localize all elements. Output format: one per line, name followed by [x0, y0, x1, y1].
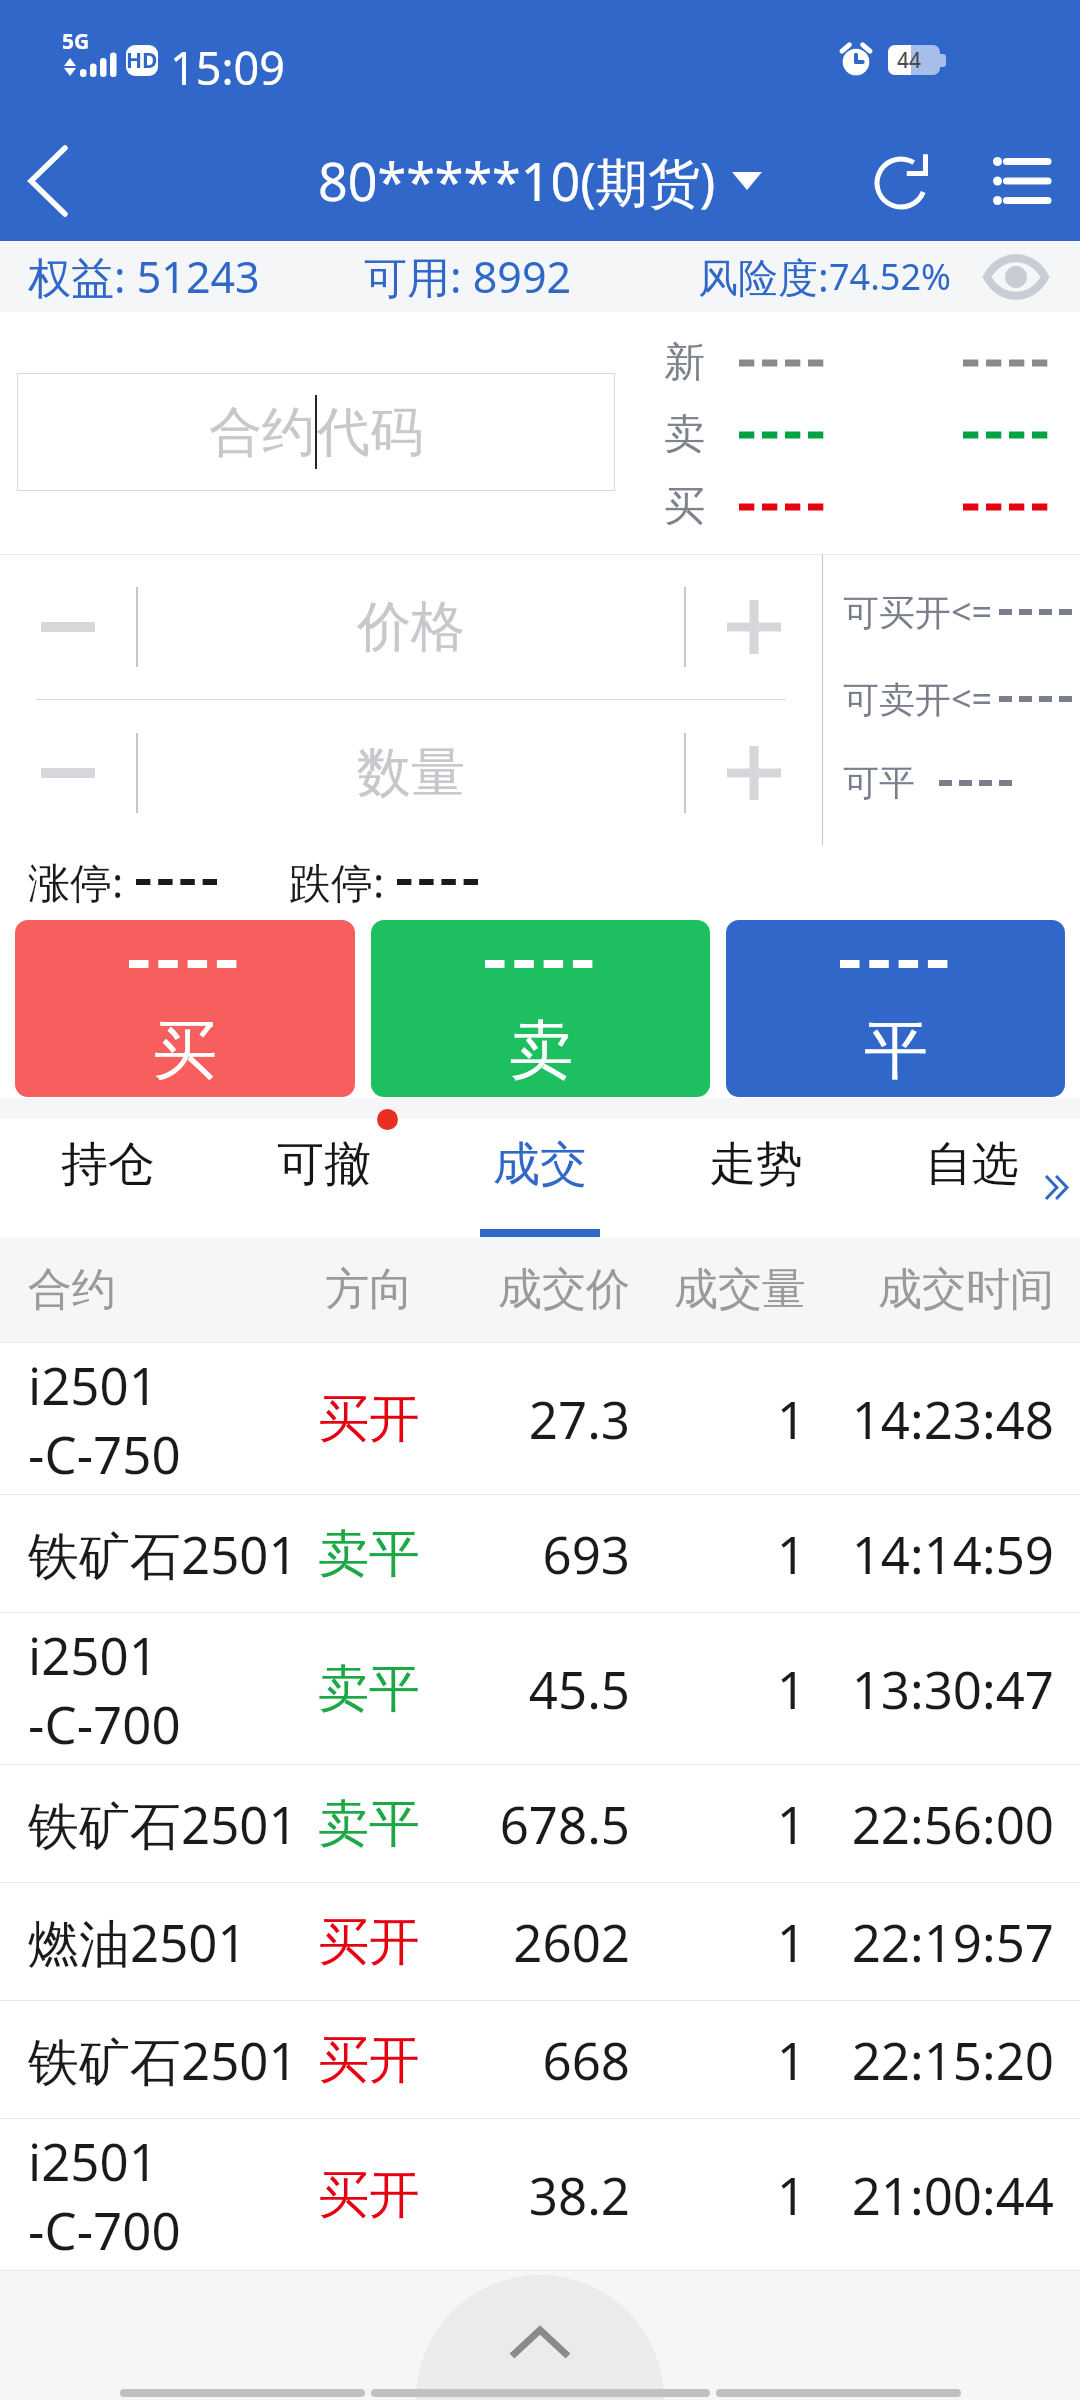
staticText: 铁矿石2501 [28, 2025, 298, 2095]
staticText: 成交量 [630, 1262, 806, 1317]
staticText: i2501 [28, 1620, 158, 1689]
button[interactable]: 合约 [17, 373, 615, 491]
button[interactable]: i2501 [0, 1613, 1080, 1765]
staticText: 14:14:59 [806, 1519, 1054, 1588]
staticText: 风险度: [698, 249, 829, 304]
staticText: 14:23:48 [806, 1384, 1054, 1453]
button[interactable]: Scroll to top [416, 2275, 664, 2400]
button[interactable]: Toggle balance visibility [976, 241, 1056, 312]
button[interactable]: Back [716, 2389, 961, 2397]
staticText: 买开 [308, 1910, 430, 1974]
button[interactable]: 铁矿石2501 [0, 2001, 1080, 2119]
staticText: 铁矿石2501 [28, 1519, 298, 1589]
button[interactable]: 燃油2501 [0, 1883, 1080, 2001]
staticText: 卖 [509, 1010, 573, 1091]
button[interactable]: 平 [726, 920, 1065, 1097]
staticText: 可平 [843, 760, 915, 805]
staticText: 成交 [493, 1135, 587, 1194]
staticText: 38.2 [430, 2160, 630, 2229]
staticText: 买 [664, 481, 705, 533]
staticText: 铁矿石2501 [28, 1789, 298, 1859]
staticText: 21:00:44 [806, 2160, 1054, 2229]
staticText: 13:30:47 [806, 1654, 1054, 1723]
staticText: 44 [897, 46, 922, 75]
staticText: 卖 [664, 409, 705, 461]
staticText: 22:56:00 [806, 1789, 1054, 1858]
button[interactable]: 自选 [864, 1119, 1080, 1237]
staticText: -C-700 [28, 2195, 181, 2264]
button[interactable]: 铁矿石2501 [0, 1765, 1080, 1883]
staticText: 668 [430, 2025, 630, 2094]
staticText: 693 [430, 1519, 630, 1588]
staticText: 成交时间 [806, 1262, 1054, 1317]
button[interactable]: i2501 [0, 1343, 1080, 1495]
staticText: 27.3 [430, 1384, 630, 1453]
button[interactable]: 走势 [648, 1119, 864, 1237]
staticText: -C-700 [28, 1689, 181, 1758]
staticText: 买 [153, 1010, 217, 1091]
button[interactable]: 铁矿石2501 [0, 1495, 1080, 1613]
staticText: 价格 [357, 593, 465, 661]
staticText: 5G [62, 27, 90, 56]
staticText: 80*****10(期货) [318, 145, 716, 216]
button[interactable]: Back [0, 120, 96, 241]
button[interactable]: 卖 [371, 920, 710, 1097]
button[interactable]: Decrease 数量 [0, 700, 136, 845]
staticText: 持仓 [61, 1135, 155, 1194]
button[interactable]: 可撤 [216, 1119, 432, 1237]
button[interactable]: Recents [120, 2389, 365, 2397]
staticText: 卖平 [308, 1792, 430, 1856]
staticText: 新 [664, 337, 705, 389]
button[interactable]: 买 [15, 920, 355, 1097]
staticText: 方向 [308, 1262, 430, 1317]
staticText: 2602 [430, 1907, 630, 1976]
staticText: 合约 [28, 1262, 308, 1317]
staticText: 买开 [308, 2028, 430, 2092]
staticText: 1 [630, 1654, 806, 1723]
staticText: 走势 [709, 1135, 803, 1194]
button[interactable]: Refresh [844, 120, 962, 241]
staticText: 权益: 51243 [28, 247, 260, 306]
staticText: 涨停: [28, 853, 124, 910]
staticText: 卖平 [308, 1522, 430, 1586]
button[interactable]: More tabs [1035, 1165, 1077, 1209]
staticText: 平 [864, 1010, 928, 1091]
button[interactable]: i2501 [0, 2119, 1080, 2271]
staticText: 卖平 [308, 1657, 430, 1721]
staticText: 1 [630, 1519, 806, 1588]
staticText: 1 [630, 2160, 806, 2229]
button[interactable]: 持仓 [0, 1119, 216, 1237]
staticText: 代码 [317, 399, 423, 466]
staticText: i2501 [28, 2126, 158, 2195]
staticText: 跌停: [289, 853, 385, 910]
staticText: 1 [630, 2025, 806, 2094]
button[interactable]: 价格 [138, 555, 684, 699]
staticText: 1 [630, 1789, 806, 1858]
staticText: 可撤 [277, 1135, 371, 1194]
staticText: 可卖开<= [843, 674, 993, 723]
staticText: 自选 [925, 1135, 1019, 1194]
button[interactable]: Menu [962, 120, 1080, 241]
button[interactable]: 数量 [138, 700, 684, 845]
button[interactable]: Increase 数量 [686, 700, 822, 845]
button[interactable]: 成交 [432, 1119, 648, 1237]
staticText: 可用: 8992 [364, 247, 572, 306]
button[interactable]: 80*****10(期货) [318, 145, 762, 216]
staticText: HD [126, 46, 158, 75]
staticText: 45.5 [430, 1654, 630, 1723]
button[interactable]: Decrease 价格 [0, 555, 136, 699]
staticText: 1 [630, 1384, 806, 1453]
staticText: 燃油2501 [28, 1907, 247, 1977]
staticText: 合约 [209, 399, 315, 466]
staticText: 22:19:57 [806, 1907, 1054, 1976]
button[interactable]: Increase 价格 [686, 555, 822, 699]
staticText: 买开 [308, 2163, 430, 2227]
staticText: i2501 [28, 1350, 158, 1419]
staticText: 678.5 [430, 1789, 630, 1858]
staticText: 74.52% [829, 252, 951, 301]
staticText: 可买开<= [843, 587, 993, 636]
staticText: 成交价 [430, 1262, 630, 1317]
staticText: -C-750 [28, 1419, 181, 1488]
staticText: 15:09 [170, 37, 286, 98]
